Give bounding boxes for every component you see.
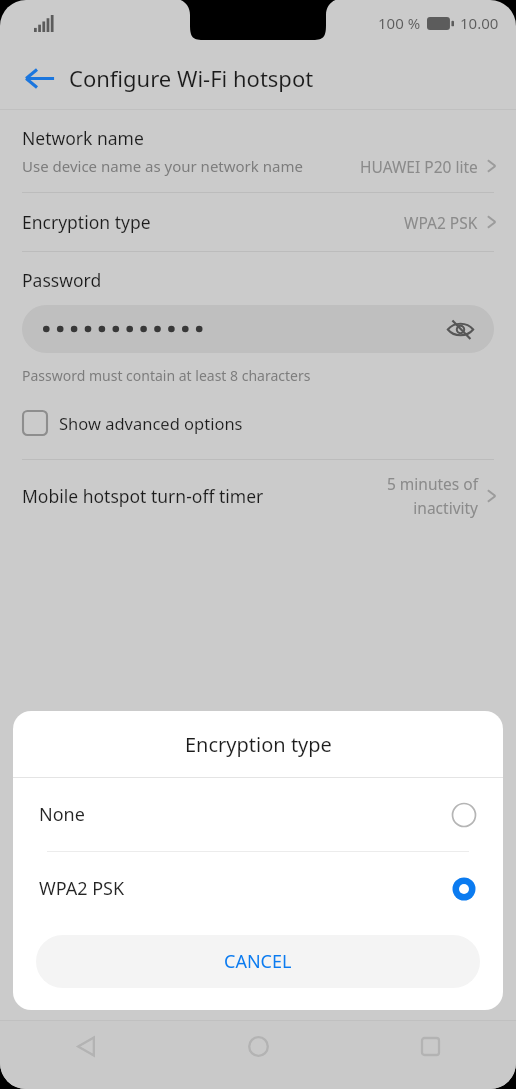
staticText: Network name <box>22 126 144 150</box>
staticText: Password <box>22 268 102 292</box>
button[interactable]: Back <box>58 1020 114 1073</box>
staticText: Password must contain at least 8 charact… <box>22 366 311 385</box>
staticText: WPA2 PSK <box>39 876 125 901</box>
button[interactable]: None <box>13 778 503 851</box>
staticText: Encryption type <box>185 731 332 758</box>
button[interactable]: Encryption type <box>0 193 516 251</box>
staticText: Encryption type <box>22 210 151 234</box>
button[interactable]: Show password <box>442 311 478 347</box>
staticText: CANCEL <box>224 949 292 974</box>
button[interactable]: WPA2 PSK <box>13 852 503 925</box>
button[interactable]: Network name <box>0 110 516 192</box>
button[interactable]: Mobile hotspot turn-off timer <box>0 460 516 531</box>
staticText: 10.00 <box>460 13 499 33</box>
button[interactable]: CANCEL <box>36 935 480 988</box>
staticText: 5 minutes of inactivity <box>370 473 478 518</box>
staticText: None <box>39 802 85 827</box>
staticText: Configure Wi-Fi hotspot <box>69 63 314 93</box>
staticText: Use device name as your network name <box>22 156 303 176</box>
button[interactable]: Back <box>12 51 66 105</box>
button[interactable]: Home <box>230 1020 286 1073</box>
staticText: WPA2 PSK <box>404 212 478 233</box>
staticText: Show advanced options <box>59 412 243 434</box>
button[interactable]: Show advanced options <box>22 410 243 436</box>
staticText: HUAWEI P20 lite <box>360 156 478 177</box>
staticText: 100 % <box>378 13 421 33</box>
staticText: Mobile hotspot turn-off timer <box>22 484 264 508</box>
button[interactable]: Show password <box>22 305 494 353</box>
button[interactable]: Recent apps <box>402 1020 458 1073</box>
